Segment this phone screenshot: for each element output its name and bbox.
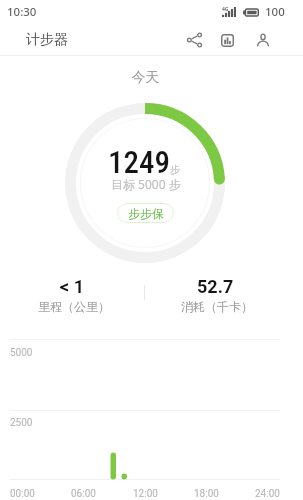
staticText: 06:00 (71, 488, 96, 500)
staticText: 00:00 (10, 488, 35, 500)
button[interactable]: < 1 (12, 276, 132, 314)
staticText: 52.7 (197, 276, 234, 297)
staticText: 目标 5000 步 (111, 176, 181, 192)
staticText: 10:30 (7, 4, 37, 20)
button[interactable]: Share (180, 24, 208, 56)
staticText: 消耗（千卡） (181, 299, 253, 314)
staticText: 计步器 (26, 31, 68, 49)
staticText: 100 (265, 4, 285, 20)
staticText: 步步保 (128, 206, 164, 221)
button[interactable]: Statistics (213, 24, 241, 56)
button[interactable]: 步步保 (117, 203, 174, 223)
staticText: 今天 (0, 69, 297, 87)
staticText: 24:00 (255, 488, 280, 500)
staticText: 1249 (108, 144, 170, 180)
button[interactable]: 52.7 (155, 276, 275, 314)
staticText: 12:00 (133, 488, 158, 500)
staticText: 里程（公里） (38, 299, 110, 314)
staticText: 18:00 (194, 488, 219, 500)
staticText: 5000 (10, 347, 33, 359)
staticText: 2500 (10, 417, 33, 429)
staticText: 步 (170, 163, 180, 176)
staticText: 4G (222, 6, 229, 13)
staticText: < 1 (60, 276, 84, 297)
button[interactable]: Profile (249, 24, 277, 56)
